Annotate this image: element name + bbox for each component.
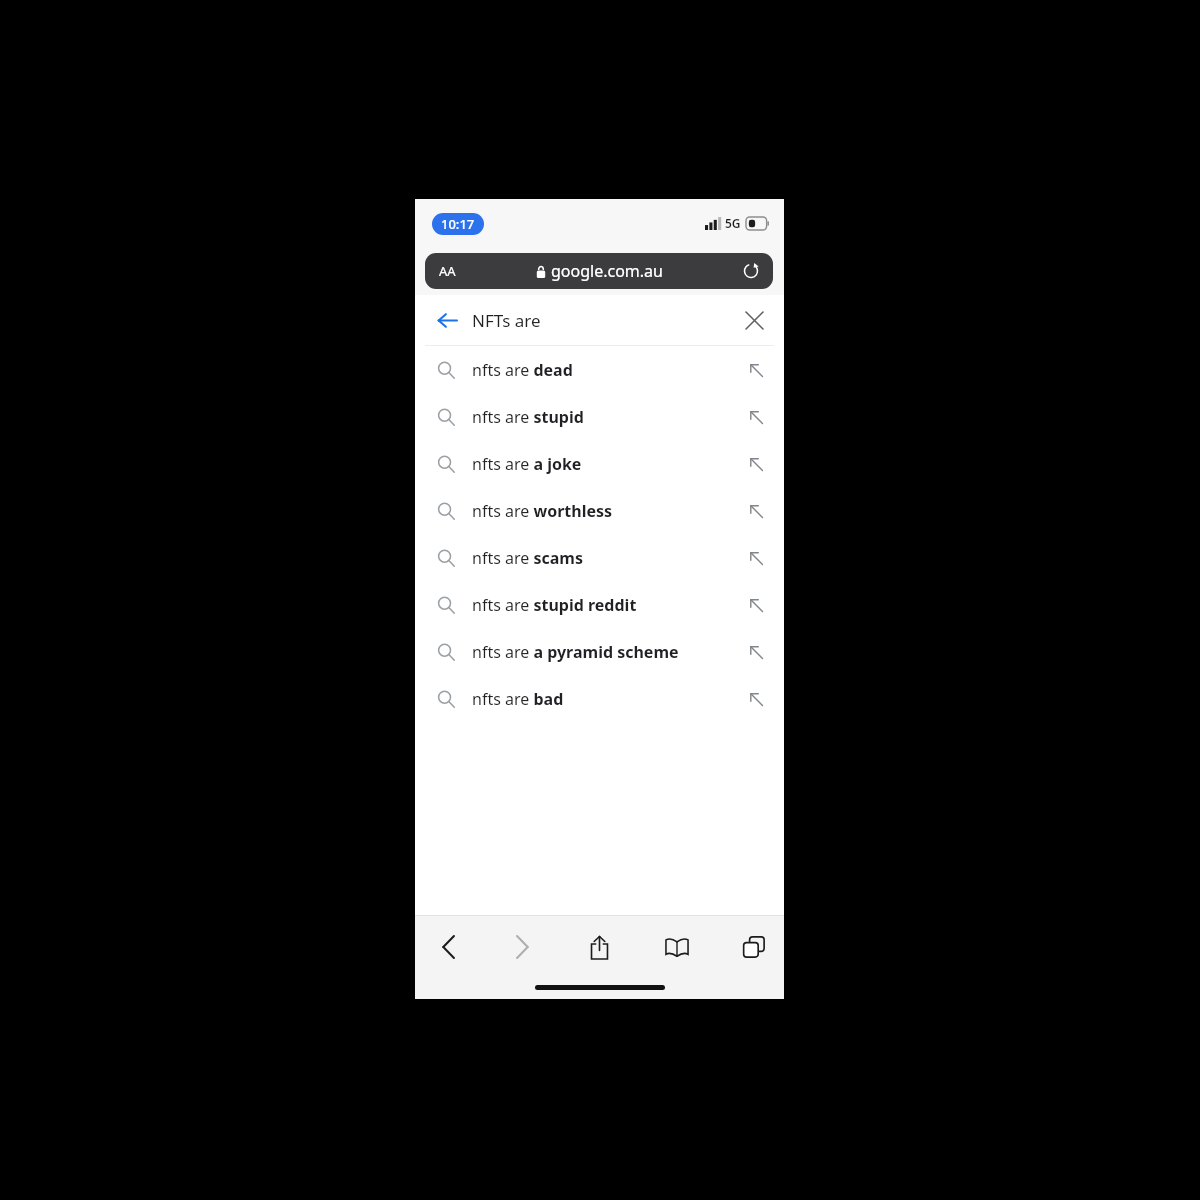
button[interactable]: Tabs xyxy=(733,926,775,968)
staticText: 5G xyxy=(725,215,741,231)
button[interactable]: Share xyxy=(578,926,620,968)
staticText: nfts are bad xyxy=(472,688,564,710)
button[interactable]: Forward xyxy=(501,926,543,968)
button[interactable]: nfts are worthless xyxy=(415,487,784,534)
button[interactable]: AA xyxy=(425,253,773,289)
button[interactable]: Bookmarks xyxy=(656,926,698,968)
button[interactable]: Back xyxy=(427,926,469,968)
staticText: nfts are stupid xyxy=(472,406,584,428)
staticText: nfts are dead xyxy=(472,359,573,381)
staticText: 10:17 xyxy=(441,215,475,233)
button[interactable]: nfts are stupid reddit xyxy=(415,581,784,628)
button[interactable]: Clear xyxy=(738,304,770,336)
button[interactable]: nfts are a pyramid scheme xyxy=(415,628,784,675)
button[interactable]: nfts are stupid xyxy=(415,393,784,440)
staticText: nfts are stupid reddit xyxy=(472,594,637,616)
staticText: google.com.au xyxy=(551,260,663,282)
button[interactable]: nfts are a joke xyxy=(415,440,784,487)
button[interactable]: Reload xyxy=(739,259,763,283)
button[interactable]: nfts are bad xyxy=(415,675,784,722)
staticText: nfts are worthless xyxy=(472,500,613,522)
staticText: nfts are a pyramid scheme xyxy=(472,641,679,663)
button[interactable]: Back xyxy=(431,304,463,336)
staticText: nfts are a joke xyxy=(472,453,582,475)
staticText: AA xyxy=(439,262,456,280)
staticText: nfts are scams xyxy=(472,547,583,569)
staticText: NFTs are xyxy=(472,309,541,332)
button[interactable]: nfts are scams xyxy=(415,534,784,581)
button[interactable]: Back xyxy=(415,295,784,345)
button[interactable]: nfts are dead xyxy=(415,346,784,393)
